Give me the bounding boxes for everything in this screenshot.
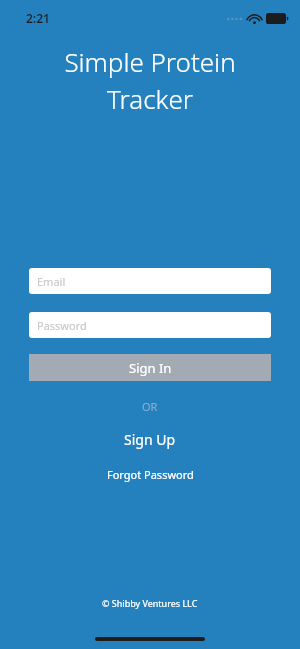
staticText: Sign In bbox=[129, 359, 172, 377]
staticText: OR bbox=[142, 399, 158, 414]
staticText: Sign Up bbox=[124, 430, 176, 449]
staticText: Forgot Password bbox=[107, 467, 194, 482]
button[interactable]: Password bbox=[29, 312, 271, 338]
staticText: © Shibby Ventures LLC bbox=[102, 597, 198, 609]
staticText: 2:21 bbox=[26, 10, 50, 26]
button[interactable]: Sign In bbox=[29, 354, 271, 381]
button[interactable]: Sign Up bbox=[110, 426, 190, 453]
staticText: Email bbox=[37, 274, 66, 289]
button[interactable]: Forgot Password bbox=[93, 463, 208, 486]
button[interactable]: Email bbox=[29, 268, 271, 294]
staticText: Simple Protein bbox=[64, 44, 236, 79]
staticText: Tracker bbox=[107, 81, 193, 116]
staticText: Password bbox=[37, 318, 87, 333]
